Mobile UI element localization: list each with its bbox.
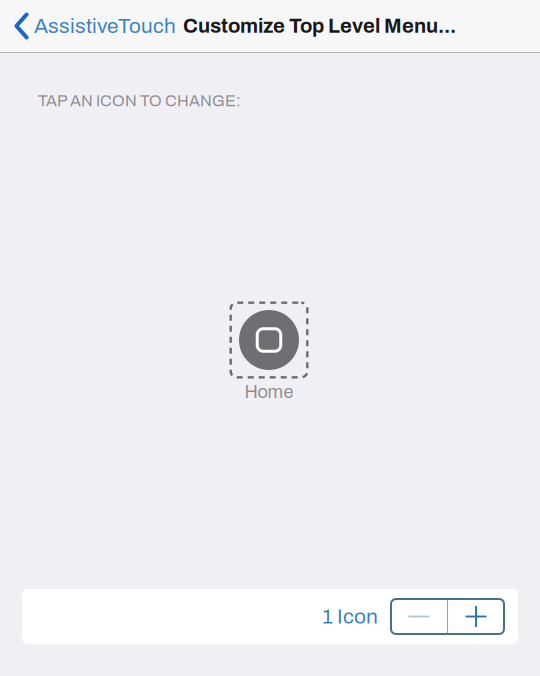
button[interactable]: AssistiveTouch: [0, 0, 183, 52]
staticText: Home: [244, 382, 293, 402]
staticText: 1 Icon: [322, 605, 378, 628]
button[interactable]: Add icon: [448, 599, 504, 634]
button[interactable]: Home icon: [229, 301, 308, 378]
staticText: TAP AN ICON TO CHANGE:: [38, 92, 241, 110]
button[interactable]: Remove icon: [391, 599, 447, 634]
staticText: Customize Top Level Menu...: [183, 15, 456, 37]
staticText: AssistiveTouch: [34, 15, 176, 37]
